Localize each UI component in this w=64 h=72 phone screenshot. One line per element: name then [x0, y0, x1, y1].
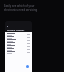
button[interactable]	[5, 33, 32, 36]
button[interactable]	[5, 42, 32, 45]
button[interactable]	[5, 39, 32, 42]
button[interactable]: Add	[26, 65, 29, 68]
staticText: electronics need servicing	[4, 8, 38, 12]
button[interactable]	[5, 45, 32, 48]
staticText: Service Tracker	[7, 28, 25, 31]
button[interactable]	[5, 36, 32, 39]
staticText: Easily see which of your	[4, 4, 35, 8]
button[interactable]	[5, 51, 32, 54]
button[interactable]	[5, 48, 32, 51]
